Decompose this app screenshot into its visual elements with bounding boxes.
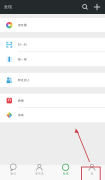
button[interactable]: 购物: [0, 94, 105, 108]
staticText: 朋友圈: [18, 23, 27, 27]
button[interactable]: 附近的人: [0, 73, 105, 87]
staticText: 摇一摇: [18, 58, 27, 61]
button[interactable]: 通讯录: [26, 165, 52, 180]
button[interactable]: 朋友圈: [0, 18, 105, 32]
staticText: 扫一扫: [18, 43, 27, 46]
staticText: 我: [90, 172, 93, 175]
button[interactable]: 游戏: [0, 108, 105, 122]
staticText: 微信: [10, 172, 16, 175]
button[interactable]: 我: [79, 165, 105, 180]
staticText: 发现: [63, 172, 69, 175]
staticText: 发现: [4, 4, 12, 9]
button[interactable]: Search: [79, 0, 91, 14]
staticText: 通讯录: [35, 172, 44, 175]
button[interactable]: Add: [91, 0, 103, 14]
staticText: 购物: [18, 99, 24, 102]
staticText: 附近的人: [18, 78, 30, 82]
button[interactable]: 微信: [0, 165, 26, 180]
button[interactable]: 扫一扫: [0, 38, 105, 52]
button[interactable]: 发现: [52, 165, 79, 180]
staticText: 游戏: [18, 113, 24, 117]
button[interactable]: 摇一摇: [0, 52, 105, 66]
